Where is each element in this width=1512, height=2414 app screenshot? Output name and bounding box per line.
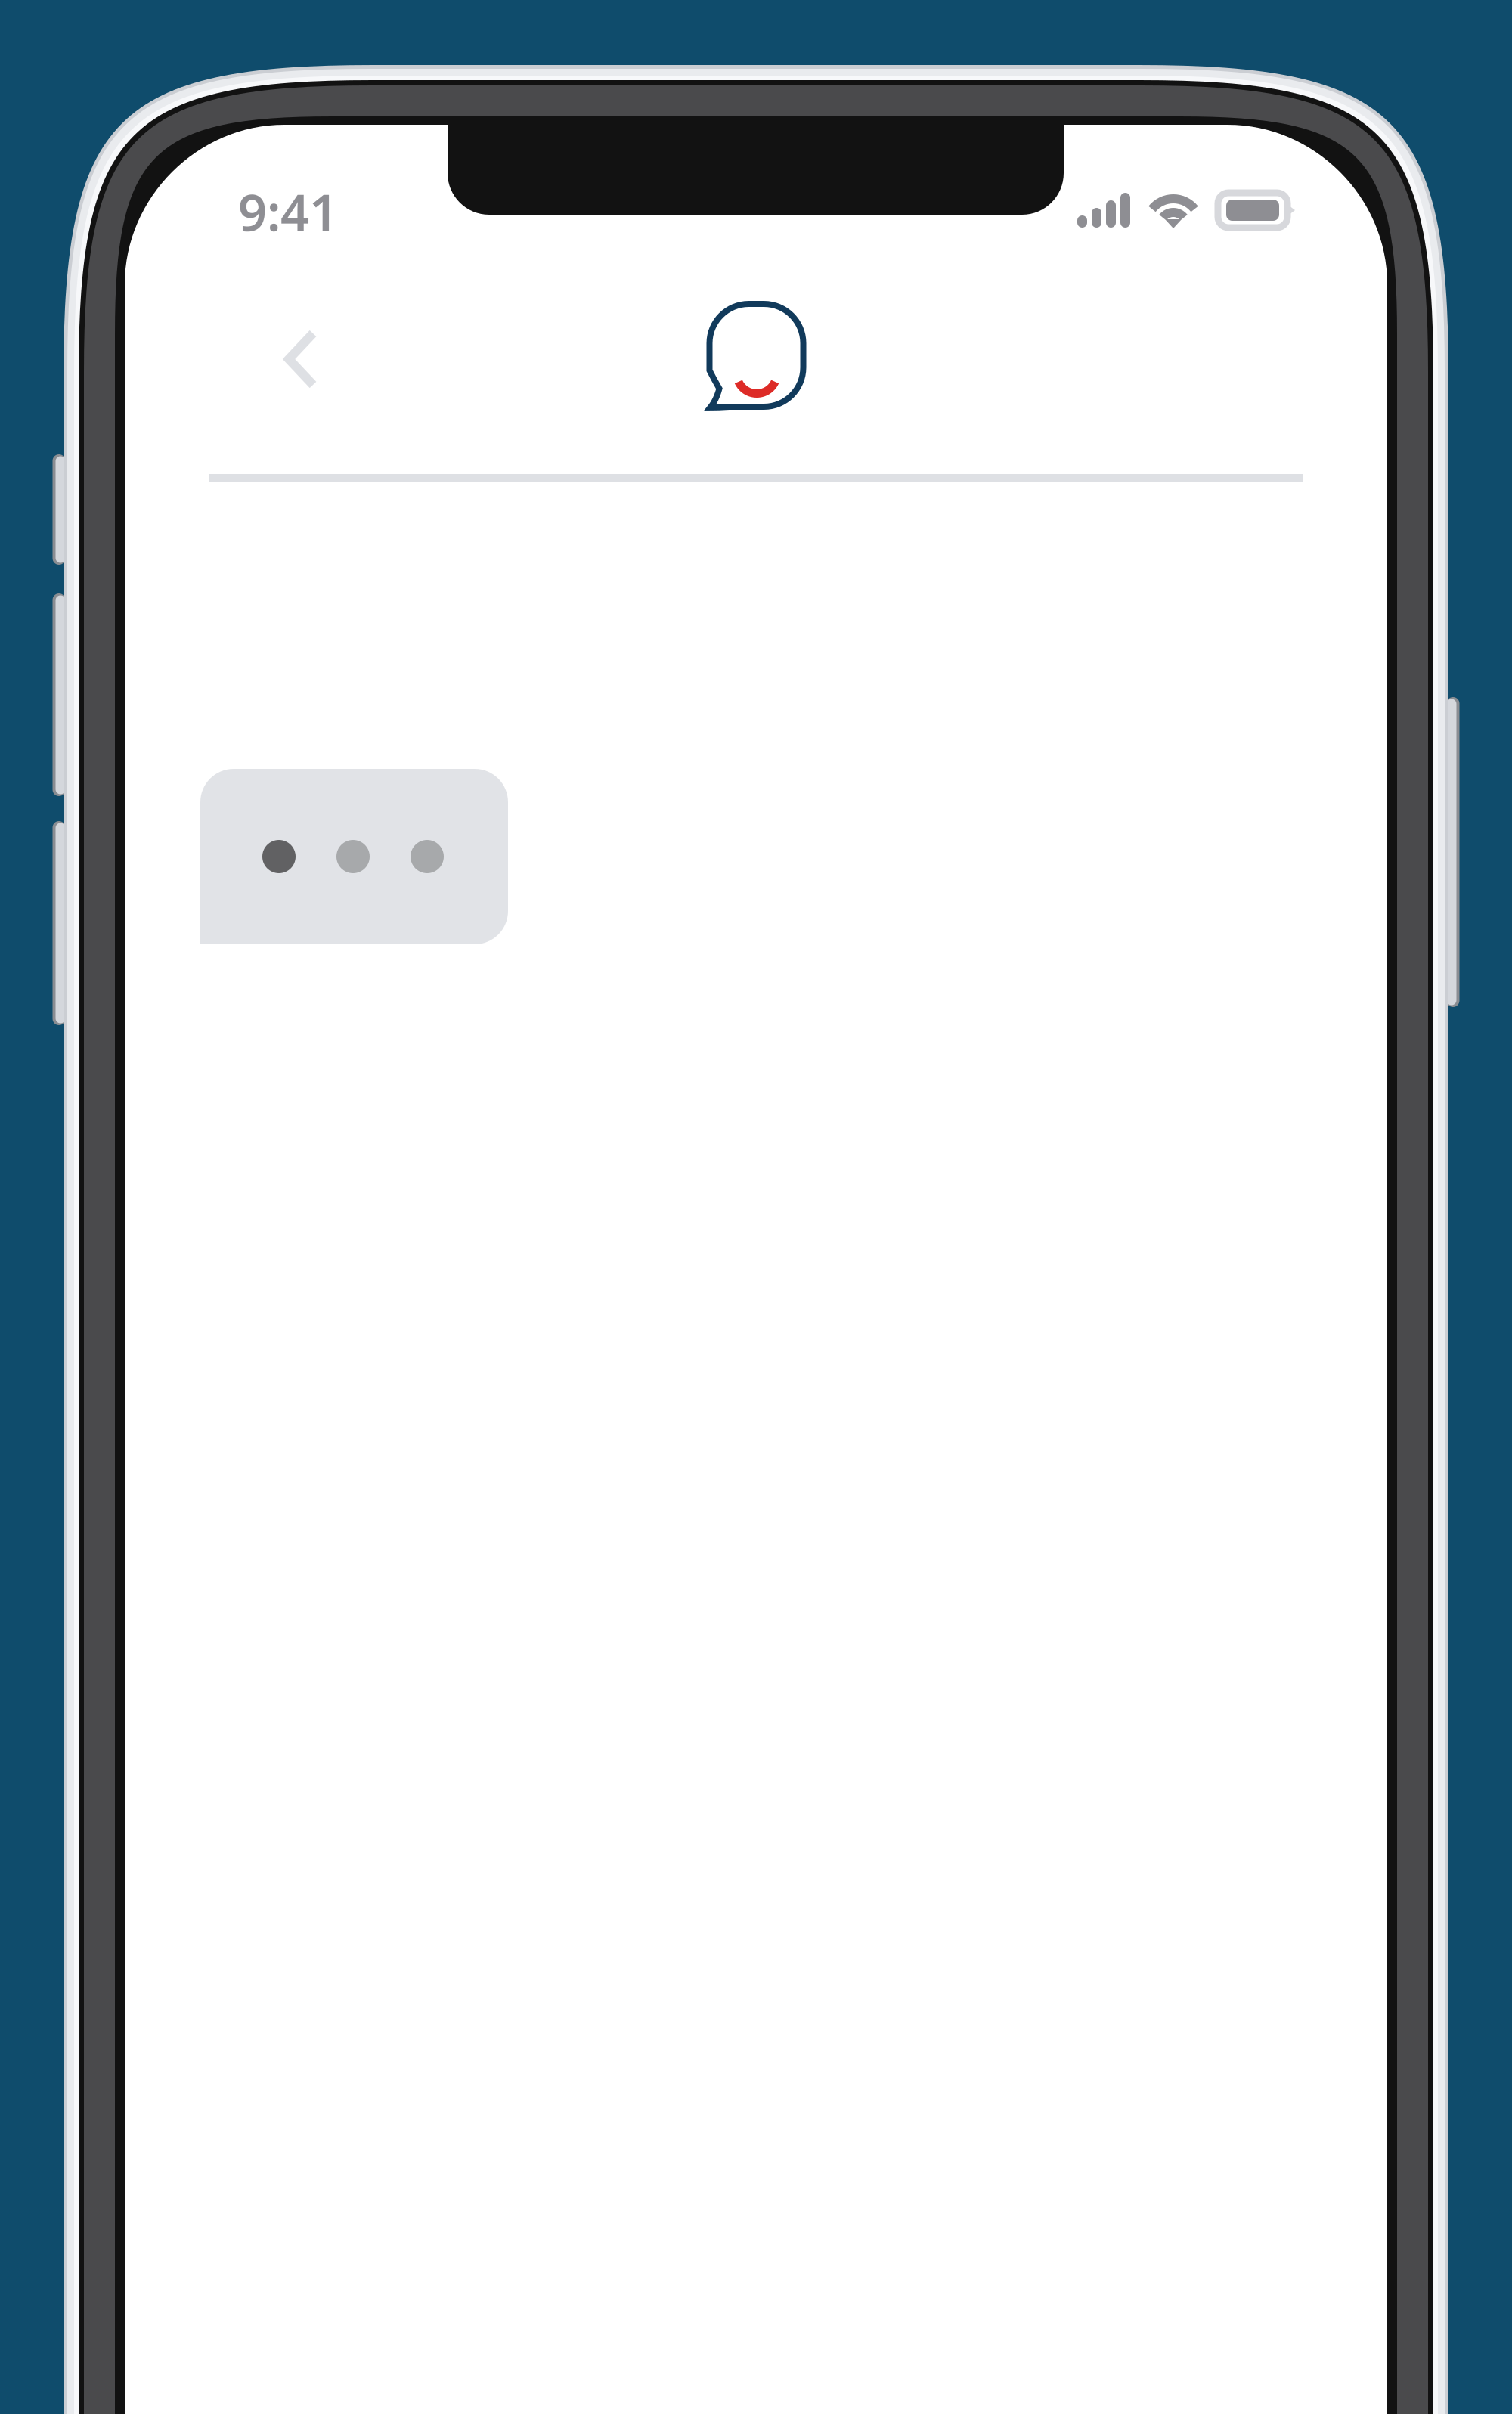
button[interactable]: Back	[251, 297, 351, 421]
staticText: 9:41	[238, 178, 338, 245]
